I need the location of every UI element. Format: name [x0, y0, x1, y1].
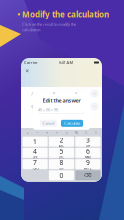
staticText: 6: [86, 147, 90, 156]
staticText: ÷: [56, 130, 58, 135]
staticText: 2: [59, 135, 63, 144]
button[interactable]: 4: [22, 148, 48, 158]
button[interactable]: 0: [49, 170, 74, 180]
staticText: 7: [33, 158, 37, 167]
staticText: JKL: [59, 156, 63, 159]
staticText: ): [95, 130, 96, 135]
staticText: WXYZ: [84, 167, 92, 170]
staticText: +: [26, 130, 28, 135]
staticText: =: [65, 130, 67, 135]
staticText: 8: [59, 158, 63, 167]
button[interactable]: 8: [49, 159, 74, 169]
button[interactable]: 9: [65, 87, 87, 100]
staticText: −: [93, 104, 95, 109]
staticText: calculation: [22, 27, 40, 32]
button[interactable]: 3: [75, 137, 100, 147]
staticText: ⌫: [84, 172, 92, 178]
staticText: ✕: [25, 68, 29, 74]
staticText: Carrier: [24, 60, 38, 65]
staticText: TUV: [59, 167, 64, 170]
button[interactable]: 7: [21, 87, 43, 100]
staticText: MNO: [85, 156, 91, 159]
button[interactable]: 4: [21, 100, 43, 113]
staticText: 45 + 50 = 95: [38, 107, 58, 112]
staticText: PQRS: [32, 167, 39, 170]
staticText: 8: [52, 90, 55, 97]
staticText: %: [75, 130, 78, 135]
staticText: 9: [74, 90, 77, 97]
staticText: 9: [86, 158, 90, 167]
button[interactable]: Cancel: [40, 120, 57, 127]
staticText: 9:41 AM: [58, 60, 73, 65]
button[interactable]: 5: [49, 148, 74, 158]
staticText: 5: [52, 103, 55, 110]
button[interactable]: 1: [22, 137, 48, 147]
button[interactable]: Operator ×: [87, 87, 102, 100]
staticText: 3: [86, 135, 90, 144]
staticText: Modify the calculation: [22, 9, 109, 20]
staticText: ×: [93, 91, 95, 96]
button[interactable]: Operator −: [87, 100, 102, 113]
staticText: ×: [46, 130, 48, 135]
staticText: −: [36, 130, 38, 135]
button[interactable]: 6: [65, 100, 87, 113]
staticText: ABC: [58, 144, 64, 148]
button[interactable]: 5: [43, 100, 65, 113]
button[interactable]: Delete: [75, 170, 100, 180]
staticText: (: [85, 130, 86, 135]
button[interactable]: 2: [49, 137, 74, 147]
button[interactable]: 8: [43, 87, 65, 100]
button[interactable]: Calculate: [61, 120, 83, 127]
staticText: GHI: [33, 156, 38, 159]
staticText: Click on the result to modify the: [22, 22, 76, 27]
staticText: Cancel: [42, 121, 54, 126]
button[interactable]: 9: [75, 159, 100, 169]
staticText: 5: [59, 147, 63, 156]
staticText: Edit the answer: [42, 97, 80, 104]
staticText: DEF: [86, 144, 90, 148]
button[interactable]: 6: [75, 148, 100, 158]
staticText: 0: [59, 171, 63, 180]
staticText: 7: [30, 90, 33, 97]
staticText: 4: [33, 147, 37, 156]
staticText: Calculate: [64, 121, 80, 126]
staticText: 4: [30, 103, 33, 110]
staticText: 1: [33, 137, 37, 146]
button[interactable]: 7: [22, 159, 48, 169]
